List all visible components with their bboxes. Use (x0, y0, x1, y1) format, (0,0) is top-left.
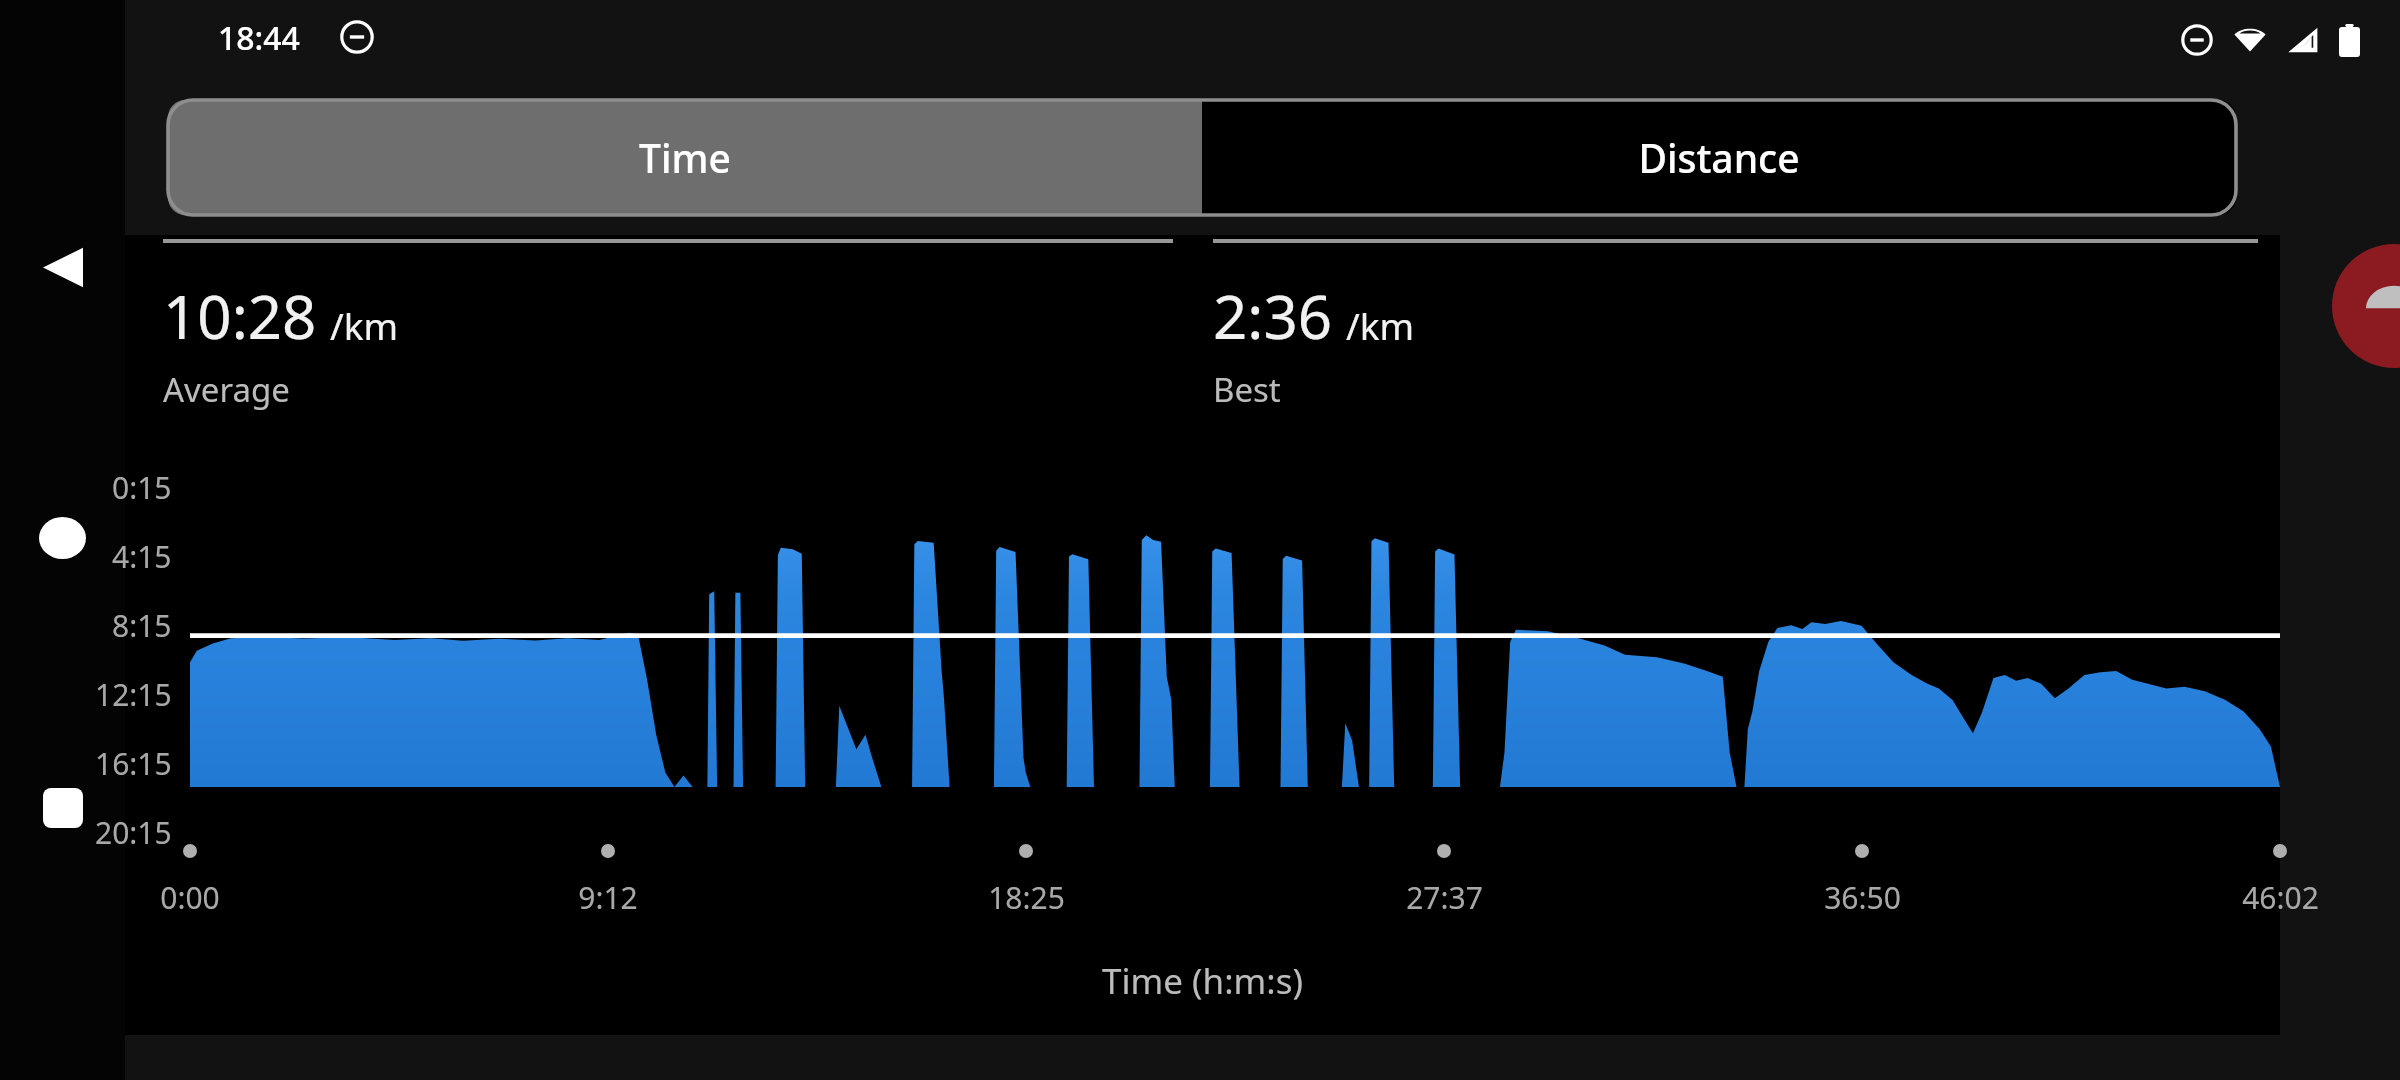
staticText: 18:25 (988, 877, 1065, 918)
staticText: 8:15 (112, 605, 172, 646)
staticText: Average (163, 367, 290, 412)
button[interactable]: Start activity (2332, 244, 2400, 368)
staticText: /km (330, 300, 399, 350)
button[interactable]: Time (168, 100, 1202, 215)
staticText: Time (639, 131, 731, 184)
staticText: 2:36 (1213, 275, 1333, 357)
button[interactable]: Distance (1202, 100, 2236, 215)
staticText: 20:15 (95, 812, 172, 853)
staticText: 46:02 (2242, 877, 2319, 918)
staticText: 12:15 (95, 674, 172, 715)
staticText: 10:28 (163, 275, 317, 357)
staticText: Time (h:m:s) (1102, 957, 1303, 1005)
staticText: Best (1213, 367, 1281, 412)
staticText: 9:12 (578, 877, 638, 918)
staticText: /km (1346, 300, 1415, 350)
button[interactable]: Recent apps (0, 745, 125, 870)
staticText: Distance (1638, 131, 1800, 184)
staticText: 27:37 (1406, 877, 1483, 918)
button[interactable]: Back (0, 205, 125, 330)
staticText: 0:15 (112, 467, 172, 508)
staticText: 36:50 (1824, 877, 1901, 918)
staticText: 16:15 (95, 743, 172, 784)
button[interactable]: Home (0, 475, 125, 600)
staticText: 18:44 (218, 16, 300, 60)
staticText: 4:15 (112, 536, 172, 577)
staticText: 0:00 (160, 877, 220, 918)
